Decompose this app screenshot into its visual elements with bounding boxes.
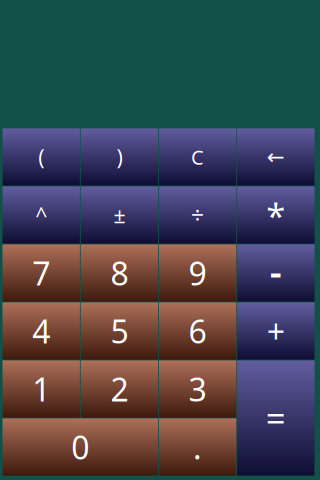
- staticText: *: [266, 192, 285, 238]
- button[interactable]: Close parenthesis: [81, 128, 158, 186]
- staticText: ←: [267, 145, 285, 169]
- staticText: (: [38, 143, 44, 171]
- staticText: 8: [110, 252, 128, 294]
- button[interactable]: Minus: [237, 244, 314, 302]
- button[interactable]: Multiply: [237, 186, 314, 244]
- button[interactable]: 1: [2, 360, 80, 418]
- staticText: 2: [110, 368, 128, 410]
- staticText: ÷: [191, 200, 204, 230]
- staticText: ±: [113, 201, 125, 229]
- button[interactable]: 3: [159, 360, 236, 418]
- staticText: 5: [110, 310, 128, 352]
- staticText: .: [193, 426, 202, 468]
- staticText: 3: [189, 368, 207, 410]
- button[interactable]: 0: [2, 418, 158, 476]
- button[interactable]: 2: [81, 360, 158, 418]
- button[interactable]: 5: [81, 302, 158, 360]
- button[interactable]: 6: [159, 302, 236, 360]
- button[interactable]: 8: [81, 244, 158, 302]
- button[interactable]: 4: [2, 302, 80, 360]
- button[interactable]: 7: [2, 244, 80, 302]
- staticText: ^: [35, 201, 47, 229]
- button[interactable]: Decimal point: [159, 418, 236, 476]
- button[interactable]: Open parenthesis: [2, 128, 80, 186]
- staticText: 9: [189, 252, 207, 294]
- button[interactable]: Divide: [159, 186, 236, 244]
- button[interactable]: Clear: [159, 128, 236, 186]
- button[interactable]: Power: [2, 186, 80, 244]
- staticText: 1: [32, 368, 50, 410]
- staticText: 6: [189, 310, 207, 352]
- staticText: -: [270, 246, 282, 296]
- button[interactable]: Backspace: [237, 128, 314, 186]
- staticText: 0: [71, 426, 89, 468]
- button[interactable]: 9: [159, 244, 236, 302]
- staticText: +: [267, 310, 285, 352]
- button[interactable]: Equals: [237, 360, 314, 476]
- staticText: =: [266, 395, 286, 441]
- button[interactable]: Plus minus: [81, 186, 158, 244]
- staticText: 7: [32, 252, 50, 294]
- staticText: ): [116, 143, 122, 171]
- staticText: 4: [32, 310, 50, 352]
- button[interactable]: Plus: [237, 302, 314, 360]
- staticText: C: [191, 144, 204, 170]
